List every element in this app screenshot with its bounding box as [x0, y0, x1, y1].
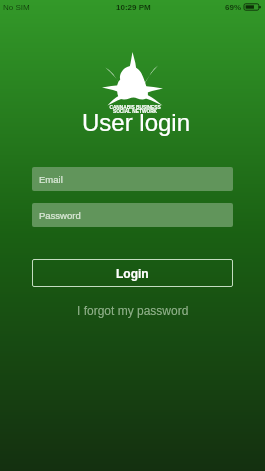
button[interactable]: Email: [32, 167, 233, 191]
staticText: Email: [39, 174, 63, 185]
staticText: 69%: [225, 3, 242, 12]
staticText: User login: [82, 109, 191, 136]
button[interactable]: Login: [32, 259, 233, 287]
staticText: CANNABIS BUSINESS SOCIAL NETWORK: [105, 105, 165, 114]
staticText: Password: [39, 210, 81, 221]
staticText: No SIM: [3, 3, 30, 12]
staticText: Login: [116, 267, 149, 280]
button[interactable]: Password: [32, 203, 233, 227]
staticText: 10:29 PM: [116, 3, 151, 12]
button[interactable]: I forgot my password: [32, 299, 233, 321]
staticText: I forgot my password: [77, 304, 189, 317]
